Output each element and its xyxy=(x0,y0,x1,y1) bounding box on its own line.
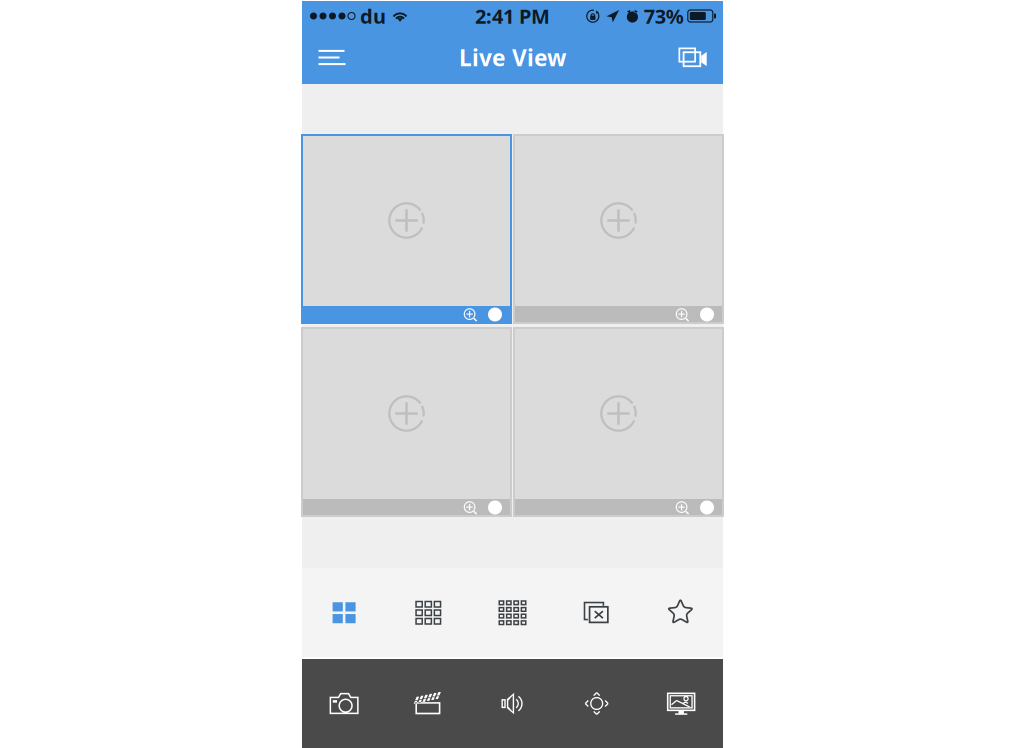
staticText: Live View xyxy=(459,42,566,72)
button[interactable]: 2 by 2 layout xyxy=(302,582,386,644)
button[interactable]: Record xyxy=(386,659,470,748)
button[interactable]: Pan tilt zoom xyxy=(555,659,639,748)
button[interactable]: Camera channel xyxy=(302,135,511,323)
button[interactable]: 4 by 4 layout xyxy=(470,582,555,644)
button[interactable]: Menu xyxy=(304,31,360,83)
staticText: 73% xyxy=(644,3,684,29)
button[interactable]: Camera channel xyxy=(302,328,511,516)
button[interactable]: Record video xyxy=(665,31,721,83)
button[interactable]: Camera channel xyxy=(514,328,723,516)
button[interactable]: Camera channel xyxy=(514,135,723,323)
staticText: du xyxy=(360,3,386,29)
button[interactable]: 3 by 3 layout xyxy=(386,582,470,644)
button[interactable]: Snapshot xyxy=(302,659,386,748)
button[interactable]: Close all xyxy=(555,582,639,644)
button[interactable]: Playback xyxy=(639,659,723,748)
button[interactable]: Audio xyxy=(470,659,555,748)
button[interactable]: Favorites xyxy=(639,582,723,644)
staticText: 2:41 PM xyxy=(475,3,550,29)
